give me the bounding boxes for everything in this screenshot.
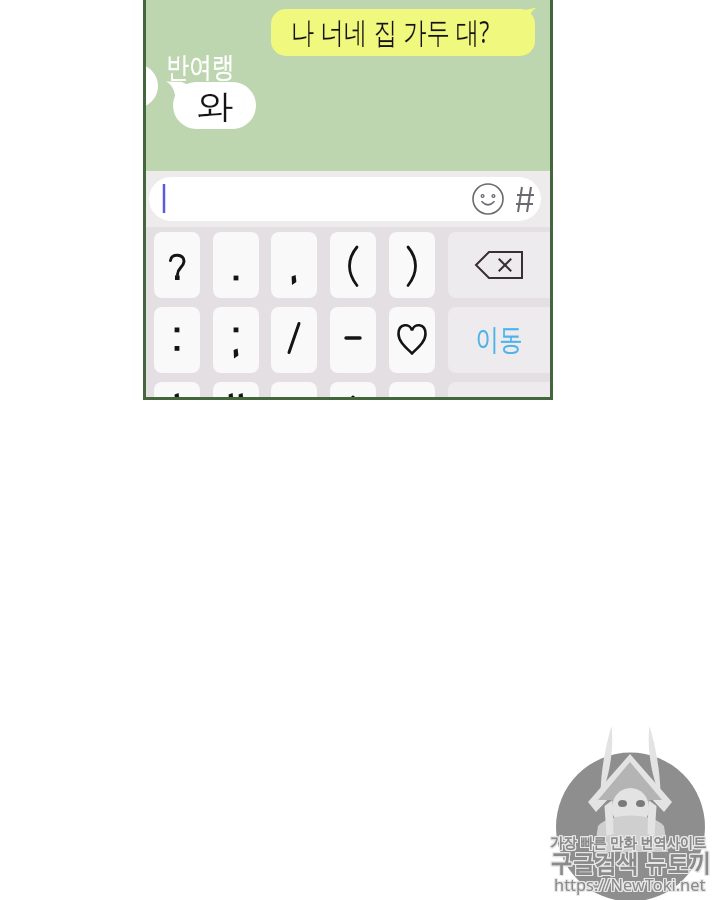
staticText: 구글검색 뉴토끼 bbox=[550, 845, 709, 879]
button[interactable]: / bbox=[271, 307, 317, 373]
button[interactable] bbox=[271, 382, 317, 397]
staticText: 가장 빠른 만화 번역사이트 bbox=[551, 833, 708, 853]
button[interactable]: Heart bbox=[389, 307, 435, 373]
button[interactable]: - bbox=[330, 307, 376, 373]
button[interactable]: Hashtag bbox=[511, 181, 541, 217]
staticText: 가장 빠른 만화 번역사이트 bbox=[550, 832, 707, 852]
staticText: https://NewToki.net bbox=[554, 874, 705, 897]
button[interactable]: 와 bbox=[173, 82, 256, 129]
staticText: 가장 빠른 만화 번역사이트 bbox=[551, 832, 708, 852]
button[interactable]: ( bbox=[330, 232, 376, 298]
button[interactable]: 나 너네 집 가두 대? bbox=[271, 9, 535, 56]
staticText: 구글검색 뉴토끼 bbox=[550, 846, 709, 880]
button[interactable] bbox=[149, 177, 541, 221]
staticText: https://NewToki.net bbox=[555, 872, 706, 895]
button[interactable]: Emoji bbox=[472, 183, 504, 215]
staticText: 구글검색 뉴토끼 bbox=[549, 845, 708, 879]
staticText: 구글검색 뉴토끼 bbox=[549, 846, 708, 880]
staticText: 가장 빠른 만화 번역사이트 bbox=[551, 831, 708, 851]
staticText: 이동 bbox=[476, 321, 522, 359]
staticText: https://NewToki.net bbox=[555, 874, 706, 897]
staticText: 구글검색 뉴토끼 bbox=[549, 844, 708, 878]
button[interactable]: ) bbox=[389, 232, 435, 298]
button[interactable]: " bbox=[213, 382, 259, 397]
button[interactable]: ; bbox=[213, 307, 259, 373]
button[interactable]: ' bbox=[154, 382, 200, 397]
staticText: 와 bbox=[196, 85, 234, 128]
staticText: 가장 빠른 만화 번역사이트 bbox=[549, 832, 706, 852]
button[interactable]: ? bbox=[154, 232, 200, 298]
staticText: 구글검색 뉴토끼 bbox=[550, 844, 709, 878]
staticText: 나 너네 집 가두 대? bbox=[291, 11, 490, 52]
button[interactable]: : bbox=[154, 307, 200, 373]
staticText: 구글검색 뉴토끼 bbox=[551, 846, 710, 880]
staticText: 가장 빠른 만화 번역사이트 bbox=[550, 831, 707, 851]
staticText: https://NewToki.net bbox=[553, 873, 704, 896]
button[interactable]: . bbox=[213, 232, 259, 298]
staticText: 구글검색 뉴토끼 bbox=[551, 845, 710, 879]
button[interactable]: ^ bbox=[330, 382, 376, 397]
staticText: 가장 빠른 만화 번역사이트 bbox=[549, 831, 706, 851]
staticText: https://NewToki.net bbox=[553, 872, 704, 895]
staticText: 구글검색 뉴토끼 bbox=[551, 844, 710, 878]
staticText: https://NewToki.net bbox=[553, 874, 704, 897]
button[interactable]: Backspace bbox=[448, 232, 550, 298]
button[interactable]: ~ bbox=[389, 382, 435, 397]
button[interactable]: , bbox=[271, 232, 317, 298]
staticText: https://NewToki.net bbox=[554, 873, 705, 896]
button[interactable]: 이동 bbox=[448, 307, 550, 373]
staticText: 반여랭 bbox=[167, 49, 234, 86]
staticText: 가장 빠른 만화 번역사이트 bbox=[550, 833, 707, 853]
staticText: https://NewToki.net bbox=[555, 873, 706, 896]
staticText: 가장 빠른 만화 번역사이트 bbox=[549, 833, 706, 853]
staticText: https://NewToki.net bbox=[554, 872, 705, 895]
